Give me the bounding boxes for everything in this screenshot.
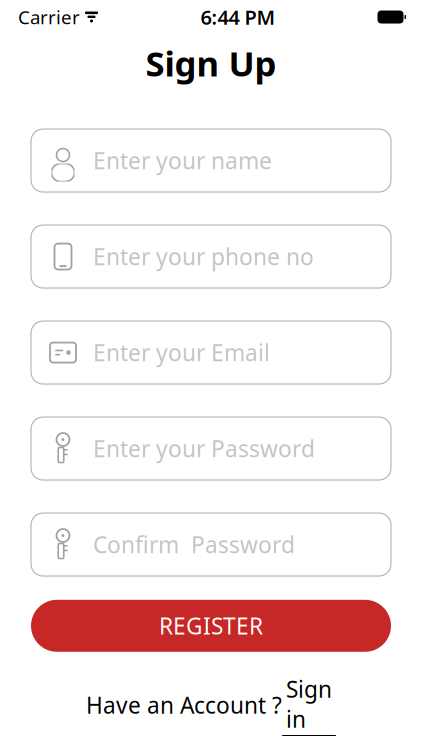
button[interactable]: Confirm Password (31, 513, 391, 576)
staticText: Confirm Password (93, 529, 295, 560)
button[interactable]: Have an Account ? (86, 674, 336, 736)
staticText: Enter your phone no (93, 241, 314, 272)
staticText: Carrier (18, 5, 80, 29)
staticText: REGISTER (159, 611, 263, 641)
button[interactable]: REGISTER (31, 600, 391, 652)
staticText: Have an Account ? (86, 690, 282, 720)
staticText: Sign in (286, 674, 332, 734)
button[interactable]: Enter your Password (31, 417, 391, 480)
staticText: 6:44 PM (200, 4, 275, 30)
staticText: Enter your name (93, 145, 272, 176)
staticText: Enter your Password (93, 433, 315, 464)
button[interactable]: Enter your name (31, 129, 391, 192)
staticText: Sign Up (145, 40, 276, 86)
staticText: Enter your Email (93, 337, 270, 368)
button[interactable]: Enter your Email (31, 321, 391, 384)
button[interactable]: Enter your phone no (31, 225, 391, 288)
